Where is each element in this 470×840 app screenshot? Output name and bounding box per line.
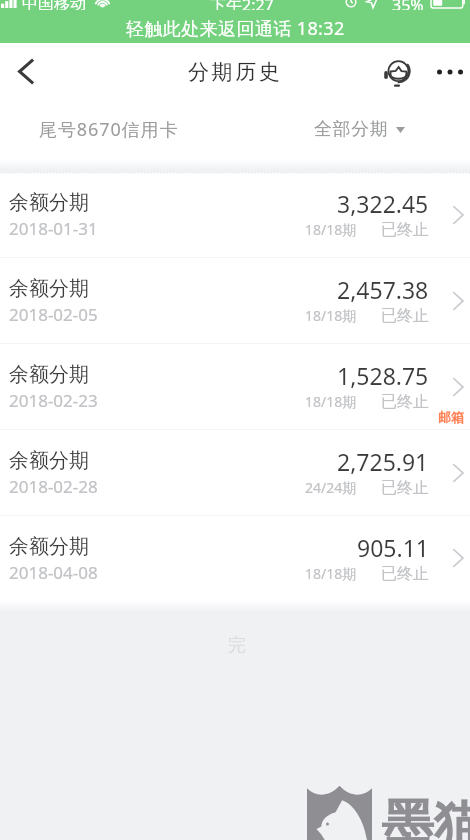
staticText: 905.11 bbox=[357, 532, 429, 563]
button[interactable]: Back bbox=[0, 43, 50, 100]
staticText: 下午2:27 bbox=[210, 0, 274, 10]
staticText: 分期历史 bbox=[188, 59, 283, 85]
staticText: 24/24期 bbox=[305, 478, 357, 497]
staticText: 2018-02-05 bbox=[9, 303, 98, 326]
staticText: 1,528.75 bbox=[337, 360, 429, 391]
staticText: 余额分期 bbox=[9, 190, 89, 215]
staticText: 已终止 bbox=[381, 478, 429, 498]
staticText: 余额分期 bbox=[9, 448, 89, 473]
staticText: 2018-01-31 bbox=[9, 217, 98, 240]
button[interactable]: 余额分期 bbox=[0, 172, 470, 257]
staticText: 尾号8670信用卡 bbox=[39, 117, 179, 142]
staticText: 2,457.38 bbox=[337, 274, 429, 305]
staticText: 2018-04-08 bbox=[9, 561, 98, 584]
staticText: 2018-02-28 bbox=[9, 475, 98, 498]
staticText: 墨猫 bbox=[381, 792, 470, 840]
staticText: 2,725.91 bbox=[337, 446, 429, 477]
staticText: 3,322.45 bbox=[337, 188, 429, 219]
button[interactable]: Customer service bbox=[381, 56, 413, 88]
staticText: 余额分期 bbox=[9, 534, 89, 559]
button[interactable]: More options bbox=[425, 50, 470, 94]
staticText: 18/18期 bbox=[305, 392, 357, 411]
staticText: 已终止 bbox=[381, 564, 429, 584]
staticText: 18/18期 bbox=[305, 220, 357, 239]
staticText: 完 bbox=[228, 634, 246, 657]
staticText: 全部分期 bbox=[314, 118, 389, 141]
button[interactable]: 邮箱 bbox=[438, 409, 464, 425]
button[interactable]: 余额分期 bbox=[0, 258, 470, 343]
staticText: 余额分期 bbox=[9, 362, 89, 387]
staticText: 18/18期 bbox=[305, 306, 357, 325]
staticText: 余额分期 bbox=[9, 276, 89, 301]
staticText: 邮箱 bbox=[438, 409, 464, 425]
staticText: 已终止 bbox=[381, 220, 429, 240]
button[interactable]: 余额分期 bbox=[0, 344, 470, 429]
staticText: 18/18期 bbox=[305, 564, 357, 583]
button[interactable]: 余额分期 bbox=[0, 430, 470, 515]
button[interactable]: 余额分期 bbox=[0, 516, 470, 600]
staticText: 35% bbox=[392, 0, 424, 10]
staticText: 中国移动 bbox=[22, 0, 86, 10]
staticText: 轻触此处来返回通话 18:32 bbox=[126, 16, 345, 41]
staticText: 已终止 bbox=[381, 392, 429, 412]
staticText: 2018-02-23 bbox=[9, 389, 98, 412]
button[interactable]: 全部分期 bbox=[308, 110, 411, 149]
staticText: 已终止 bbox=[381, 306, 429, 326]
